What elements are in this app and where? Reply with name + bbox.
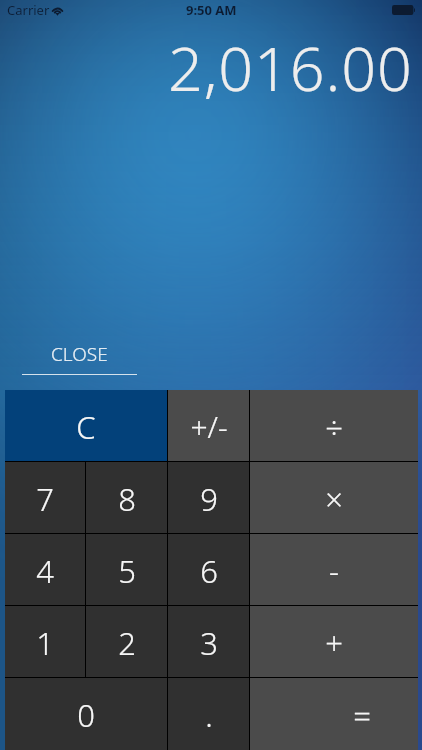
button[interactable]: × <box>250 462 418 533</box>
button[interactable]: 9 <box>168 462 249 533</box>
button[interactable]: 6 <box>168 534 249 605</box>
staticText: ÷ <box>325 406 343 448</box>
button[interactable]: 7 <box>5 462 85 533</box>
button[interactable]: 4 <box>5 534 85 605</box>
button[interactable]: + <box>250 606 418 677</box>
staticText: 2 <box>118 622 136 664</box>
button[interactable]: 1 <box>5 606 85 677</box>
button[interactable]: +/- <box>168 390 249 461</box>
button[interactable]: 3 <box>168 606 249 677</box>
staticText: 8 <box>118 478 136 520</box>
button[interactable]: CLOSE <box>21 341 138 375</box>
staticText: 3 <box>200 622 218 664</box>
button[interactable]: ÷ <box>250 390 418 461</box>
staticText: 0 <box>77 694 95 736</box>
staticText: + <box>325 622 343 664</box>
button[interactable]: . <box>168 678 249 750</box>
staticText: +/- <box>190 406 228 447</box>
button[interactable]: 2 <box>86 606 167 677</box>
staticText: 9:50 AM <box>186 1 237 19</box>
button[interactable]: 8 <box>86 462 167 533</box>
staticText: = <box>353 694 371 736</box>
staticText: - <box>329 550 339 592</box>
staticText: . <box>205 694 213 736</box>
staticText: × <box>325 478 343 520</box>
staticText: 6 <box>200 550 218 592</box>
button[interactable]: C <box>5 390 167 461</box>
button[interactable]: = <box>250 678 418 750</box>
staticText: 1 <box>36 622 54 664</box>
button[interactable]: 0 <box>5 678 167 750</box>
staticText: 9 <box>200 478 218 520</box>
button[interactable]: 5 <box>86 534 167 605</box>
staticText: 2,016.00 <box>168 26 413 109</box>
button[interactable]: - <box>250 534 418 605</box>
staticText: C <box>76 406 96 448</box>
staticText: 7 <box>36 478 54 520</box>
staticText: 4 <box>36 550 54 592</box>
staticText: CLOSE <box>51 341 108 367</box>
staticText: Carrier <box>7 1 50 19</box>
staticText: 5 <box>118 550 136 592</box>
